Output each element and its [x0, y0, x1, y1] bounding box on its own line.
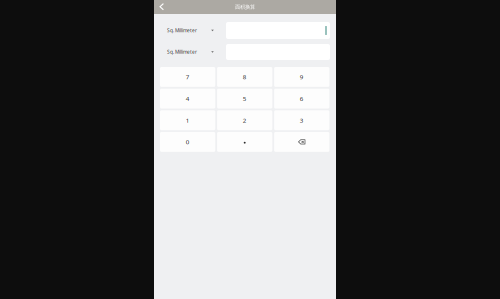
button[interactable]: Sq. Millimeter, choose unit — [154, 44, 226, 60]
staticText: 9 — [300, 73, 304, 81]
staticText: 2 — [243, 116, 247, 124]
staticText: 8 — [243, 73, 247, 81]
staticText: 1 — [186, 116, 190, 124]
button[interactable]: 4 — [160, 89, 215, 109]
staticText: Sq. Millimeter — [167, 27, 197, 34]
button[interactable]: 7 — [160, 67, 215, 87]
button[interactable]: 1 — [160, 110, 215, 130]
staticText: Sq. Millimeter — [167, 49, 197, 55]
button[interactable]: 5 — [217, 89, 272, 109]
button[interactable]: 3 — [274, 110, 329, 130]
button[interactable]: Back — [154, 0, 176, 14]
staticText: 6 — [300, 94, 304, 103]
staticText: 4 — [186, 94, 190, 103]
button[interactable]: 9 — [274, 67, 329, 87]
staticText: 0 — [186, 138, 190, 146]
button[interactable]: Delete — [274, 132, 329, 152]
button[interactable]: 2 — [217, 110, 272, 130]
staticText: 3 — [300, 116, 304, 124]
staticText: 5 — [243, 94, 247, 103]
button[interactable]: Decimal point — [217, 132, 272, 152]
staticText: 面积换算 — [235, 4, 255, 10]
button[interactable]: 0 — [160, 132, 215, 152]
button[interactable]: Sq. Millimeter, choose unit — [154, 22, 226, 39]
button[interactable]: Value — [226, 22, 330, 39]
staticText: 7 — [186, 73, 190, 81]
button[interactable]: 6 — [274, 89, 329, 109]
button[interactable]: 8 — [217, 67, 272, 87]
